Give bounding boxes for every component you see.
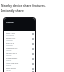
- staticText: Nearby: [6, 49, 12, 51]
- staticText: Available: [6, 44, 13, 46]
- button[interactable]: Surface Go 3: [4, 51, 35, 56]
- button[interactable]: MacBook Pro: [4, 46, 35, 51]
- staticText: Offline: [6, 64, 12, 66]
- button[interactable]: iPad Air 5: [4, 41, 35, 46]
- button[interactable]: Pixel Watch: [4, 66, 35, 71]
- button[interactable]: Galaxy S22: [4, 36, 35, 41]
- staticText: Pixel Watch: [6, 67, 16, 69]
- staticText: Nest Hub Max: [6, 62, 19, 64]
- staticText: Connected: [6, 34, 15, 36]
- staticText: Nearby device share features.: [1, 4, 46, 8]
- staticText: Available: [6, 39, 13, 41]
- button[interactable]: Nest Hub Max: [4, 61, 35, 66]
- staticText: Galaxy S22: [6, 37, 16, 39]
- staticText: Nearby: [6, 54, 12, 56]
- staticText: Instantly share: [1, 9, 24, 13]
- staticText: MacBook Pro: [6, 47, 18, 49]
- staticText: Surface Go 3: [6, 52, 17, 54]
- staticText: Pixel 7 Pro: [6, 32, 15, 34]
- staticText: Paired: [6, 69, 11, 71]
- staticText: Offline: [6, 59, 12, 61]
- staticText: Chromebook: [6, 57, 18, 59]
- button[interactable]: Galaxy Buds: [4, 71, 35, 72]
- button[interactable]: Chromebook: [4, 56, 35, 61]
- staticText: iPad Air 5: [6, 42, 15, 44]
- button[interactable]: Pixel 7 Pro: [4, 31, 35, 36]
- staticText: Nearby: [6, 21, 14, 24]
